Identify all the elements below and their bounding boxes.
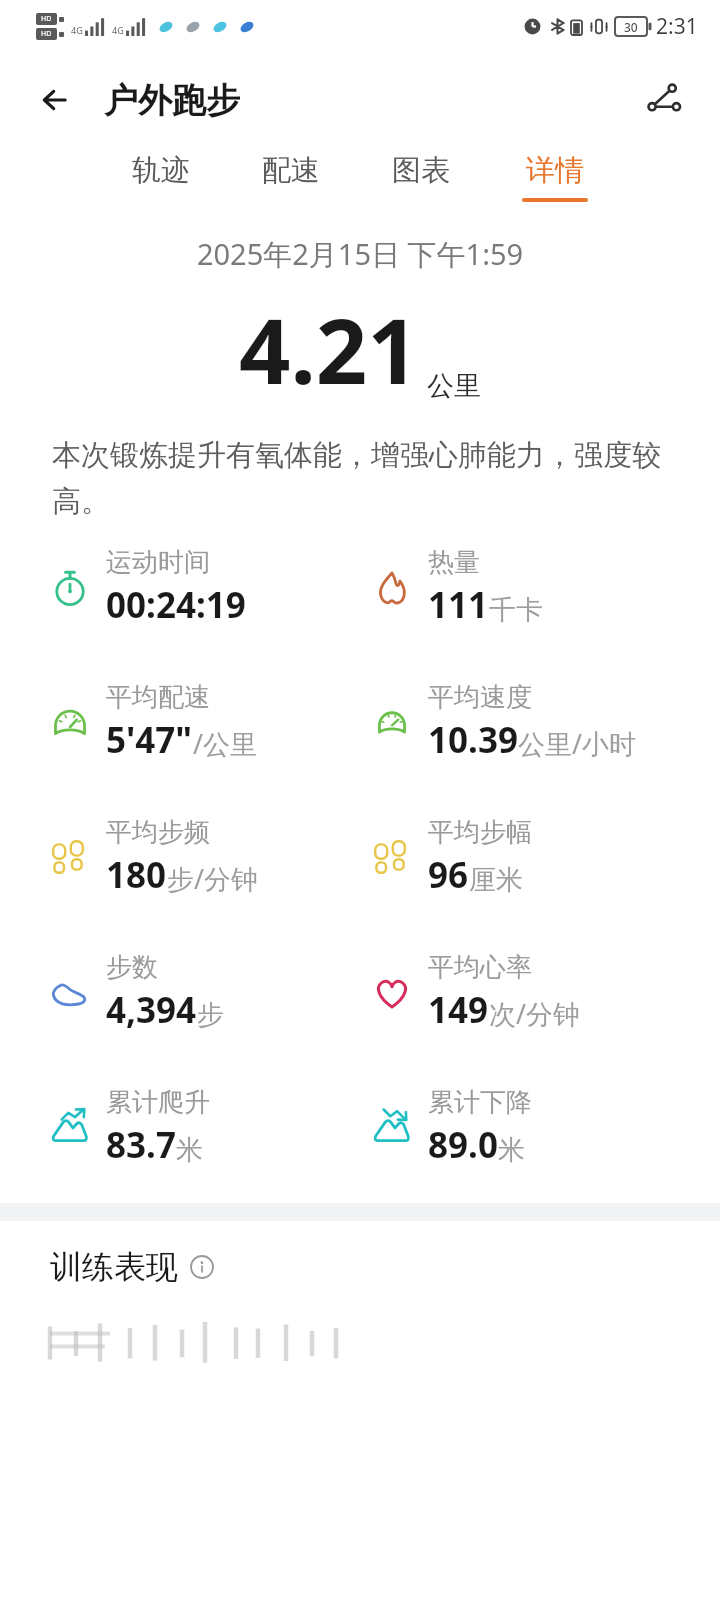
- button[interactable]: 热量: [366, 546, 543, 629]
- button[interactable]: 平均心率: [366, 951, 581, 1034]
- staticText: /公里: [193, 725, 258, 762]
- staticText: 平均心率: [428, 951, 532, 984]
- staticText: HD: [41, 29, 52, 39]
- staticText: 详情: [526, 152, 584, 189]
- staticText: 户外跑步: [104, 79, 240, 122]
- staticText: 4G: [71, 24, 83, 36]
- button[interactable]: 训练表现: [50, 1247, 720, 1287]
- button[interactable]: 轨迹: [128, 148, 194, 206]
- staticText: 平均配速: [106, 681, 210, 714]
- button[interactable]: 配速: [258, 148, 324, 206]
- staticText: 累计下降: [428, 1086, 532, 1119]
- button[interactable]: 平均步频: [44, 816, 259, 899]
- other: Info: [190, 1255, 214, 1279]
- staticText: 步数: [106, 951, 158, 984]
- staticText: 平均速度: [428, 681, 532, 714]
- staticText: 30: [624, 19, 638, 35]
- staticText: 轨迹: [132, 152, 190, 189]
- staticText: 厘米: [469, 863, 523, 897]
- staticText: 运动时间: [106, 546, 210, 579]
- button[interactable]: 累计下降: [366, 1086, 532, 1169]
- staticText: 4.21: [239, 288, 419, 411]
- staticText: 平均步幅: [428, 816, 532, 849]
- staticText: 公里: [427, 369, 481, 403]
- staticText: 111: [428, 581, 489, 629]
- staticText: 00:24:19: [106, 581, 246, 629]
- button[interactable]: 运动时间: [44, 546, 246, 629]
- staticText: 热量: [428, 546, 480, 579]
- staticText: 96: [428, 851, 469, 899]
- staticText: 千卡: [489, 593, 543, 627]
- staticText: 2:31: [656, 12, 698, 41]
- button[interactable]: 步数: [44, 951, 224, 1034]
- staticText: 本次锻炼提升有氧体能，增强心肺能力，强度较高。: [52, 437, 664, 520]
- staticText: 4,394: [106, 986, 197, 1034]
- staticText: 149: [428, 986, 489, 1034]
- staticText: 180: [106, 851, 167, 899]
- staticText: HD: [41, 14, 52, 24]
- staticText: 平均步频: [106, 816, 210, 849]
- staticText: 图表: [392, 152, 450, 189]
- button[interactable]: 平均速度: [366, 681, 637, 764]
- staticText: 累计爬升: [106, 1086, 210, 1119]
- staticText: 公里/小时: [518, 725, 637, 762]
- staticText: 次/分钟: [489, 995, 581, 1032]
- button[interactable]: Back: [34, 76, 82, 124]
- button[interactable]: 累计爬升: [44, 1086, 210, 1169]
- button[interactable]: 详情: [518, 148, 592, 206]
- staticText: 2025年2月15日 下午1:59: [0, 234, 720, 274]
- button[interactable]: 平均步幅: [366, 816, 532, 899]
- button[interactable]: 图表: [388, 148, 454, 206]
- staticText: 89.0: [428, 1121, 498, 1169]
- staticText: 训练表现: [50, 1247, 178, 1287]
- staticText: 4G: [112, 24, 124, 36]
- staticText: 配速: [262, 152, 320, 189]
- staticText: 米: [176, 1133, 203, 1167]
- staticText: 步/分钟: [167, 860, 259, 897]
- button[interactable]: 平均配速: [44, 681, 258, 764]
- staticText: 5'47": [106, 716, 193, 764]
- button[interactable]: Share: [636, 73, 690, 127]
- staticText: 83.7: [106, 1121, 176, 1169]
- staticText: 10.39: [428, 716, 518, 764]
- staticText: 米: [498, 1133, 525, 1167]
- staticText: 步: [197, 998, 224, 1032]
